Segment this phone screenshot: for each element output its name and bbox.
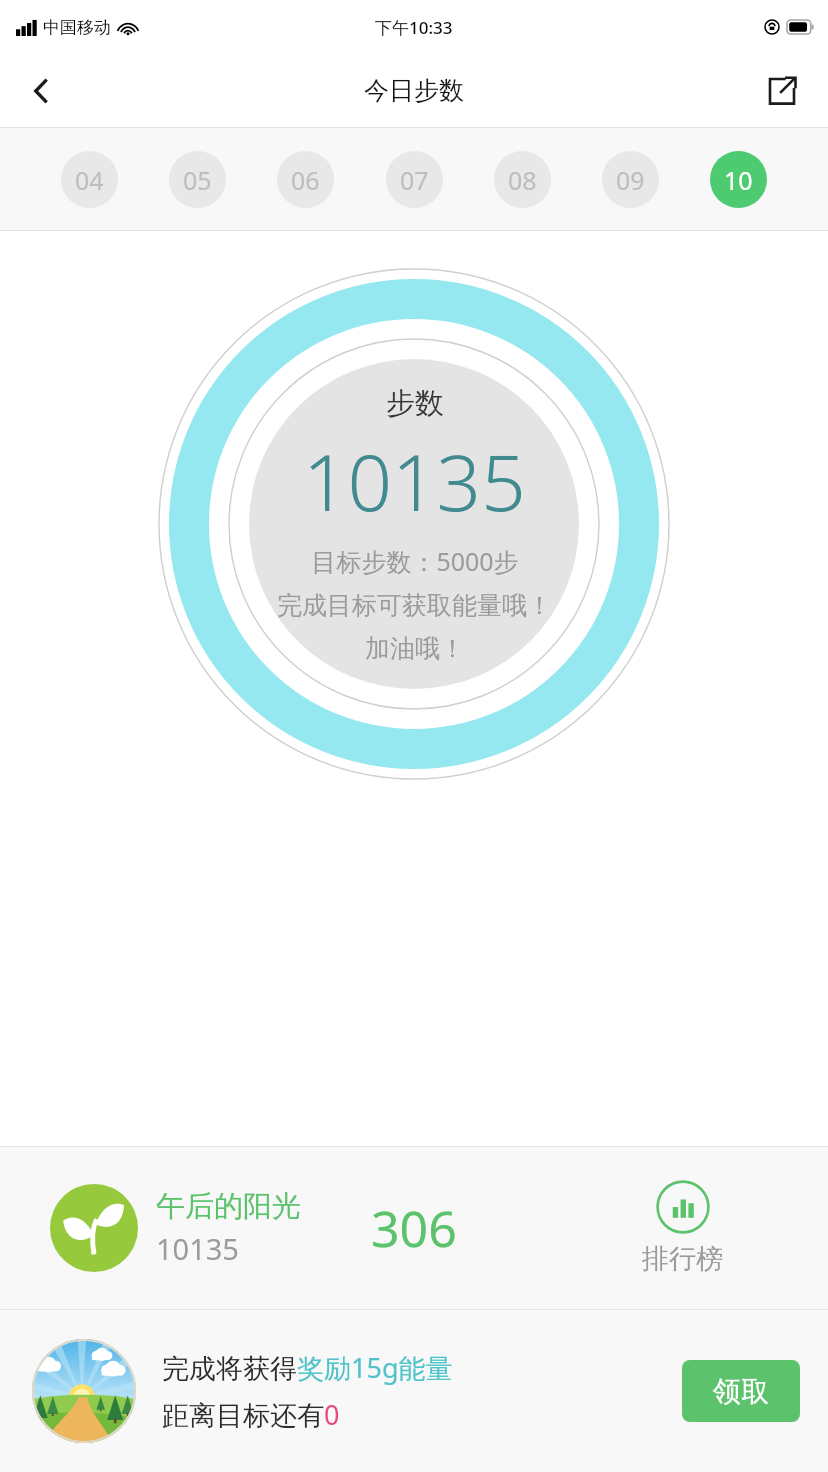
- staticText: 06: [291, 163, 320, 197]
- button[interactable]: 领取: [682, 1360, 800, 1422]
- button[interactable]: 07: [386, 151, 443, 208]
- staticText: 今日步数: [364, 75, 464, 106]
- staticText: 04: [75, 163, 104, 197]
- button[interactable]: 午后的阳光: [0, 1147, 371, 1309]
- staticText: 306: [371, 1194, 457, 1262]
- staticText: 午后的阳光: [156, 1188, 301, 1225]
- button[interactable]: Back: [14, 63, 70, 119]
- button[interactable]: 10: [710, 151, 767, 208]
- button[interactable]: 08: [494, 151, 551, 208]
- staticText: 领取: [713, 1374, 769, 1409]
- staticText: 排行榜: [642, 1242, 723, 1276]
- button[interactable]: 04: [61, 151, 118, 208]
- button[interactable]: 06: [277, 151, 334, 208]
- staticText: 09: [616, 163, 645, 197]
- staticText: 10: [724, 163, 753, 197]
- staticText: 中国移动: [43, 17, 111, 38]
- staticText: 目标步数：5000步: [311, 544, 519, 578]
- staticText: 完成将获得奖励15g能量: [162, 1349, 453, 1386]
- button[interactable]: 05: [169, 151, 226, 208]
- staticText: 05: [183, 163, 212, 197]
- staticText: 10135: [156, 1229, 239, 1268]
- staticText: 加油哦！: [365, 633, 465, 664]
- staticText: 10135: [303, 428, 526, 534]
- button[interactable]: 排行榜: [642, 1180, 723, 1276]
- staticText: 下午10:33: [375, 16, 453, 39]
- staticText: 完成目标可获取能量哦！: [277, 590, 552, 621]
- staticText: 08: [508, 163, 537, 197]
- button[interactable]: Share: [754, 63, 810, 119]
- staticText: 步数: [386, 385, 444, 422]
- button[interactable]: 09: [602, 151, 659, 208]
- staticText: 距离目标还有0: [162, 1396, 340, 1433]
- staticText: 07: [400, 163, 429, 197]
